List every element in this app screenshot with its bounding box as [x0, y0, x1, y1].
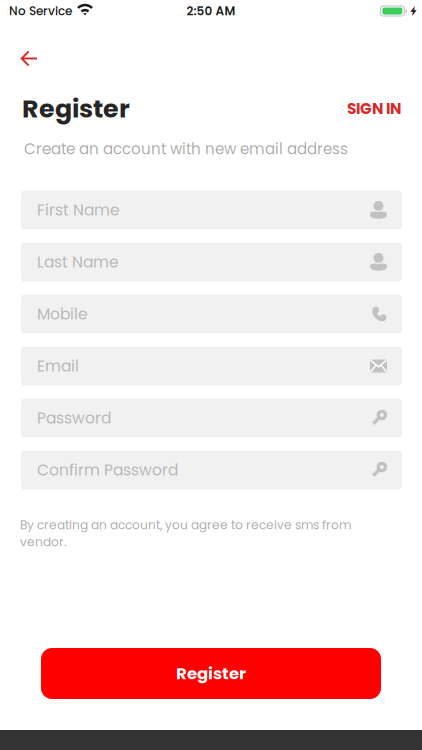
staticText: 2:50 AM — [186, 3, 235, 19]
button[interactable]: SIGN IN — [337, 92, 401, 125]
staticText: No Service — [9, 3, 72, 19]
staticText: Register — [176, 662, 246, 685]
button[interactable]: Back — [11, 43, 47, 74]
staticText: Create an account with new email address — [24, 138, 348, 160]
staticText: Mobile — [37, 303, 88, 325]
staticText: First Name — [37, 199, 120, 221]
staticText: Email — [37, 355, 79, 377]
staticText: SIGN IN — [347, 98, 401, 119]
staticText: Register — [22, 91, 130, 126]
staticText: Confirm Password — [37, 459, 178, 481]
staticText: Last Name — [37, 251, 119, 273]
button[interactable]: Register — [41, 648, 381, 699]
staticText: By creating an account, you agree to rec… — [20, 517, 351, 551]
staticText: Password — [37, 407, 111, 429]
